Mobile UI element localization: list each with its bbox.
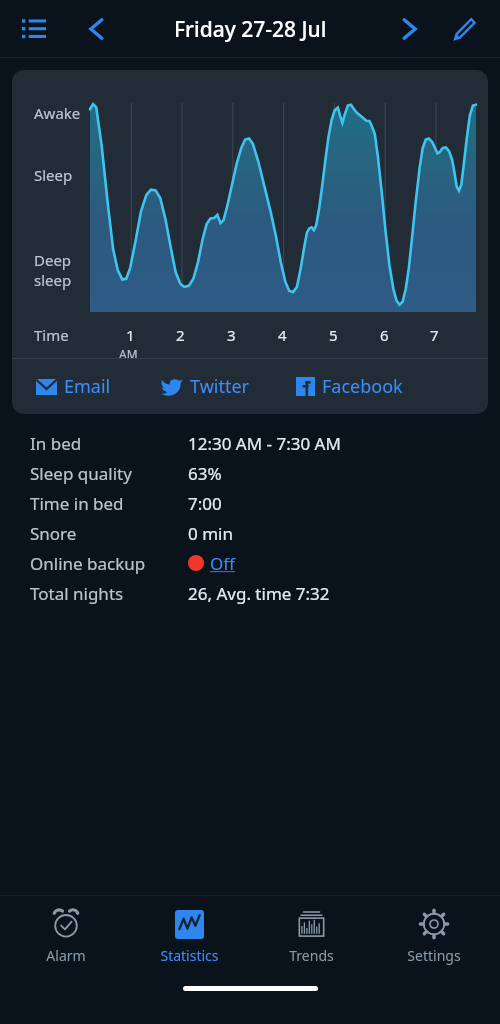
staticText: Deep bbox=[34, 250, 72, 270]
staticText: sleep bbox=[34, 270, 72, 290]
button[interactable]: In bed bbox=[30, 428, 470, 458]
button[interactable]: Menu list bbox=[12, 7, 56, 51]
staticText: AM bbox=[119, 346, 138, 362]
button[interactable]: Trends bbox=[255, 904, 367, 969]
staticText: Email bbox=[64, 374, 111, 399]
button[interactable]: Email bbox=[34, 368, 113, 405]
button[interactable]: Time in bed bbox=[30, 488, 470, 518]
staticText: In bed bbox=[30, 432, 188, 455]
staticText: 1 bbox=[126, 325, 135, 345]
button[interactable]: Alarm bbox=[10, 904, 122, 969]
button[interactable]: Statistics bbox=[133, 904, 245, 969]
button[interactable]: Total nights bbox=[30, 578, 470, 608]
staticText: 5 bbox=[329, 325, 338, 345]
staticText: 6 bbox=[380, 325, 389, 345]
staticText: Alarm bbox=[46, 946, 86, 965]
staticText: Settings bbox=[407, 946, 461, 965]
button[interactable]: Online backup bbox=[30, 548, 470, 578]
staticText: 26, Avg. time 7:32 bbox=[188, 582, 330, 605]
staticText: Snore bbox=[30, 522, 188, 545]
staticText: Time in bed bbox=[30, 492, 188, 515]
button[interactable]: Previous day bbox=[74, 6, 120, 52]
staticText: Sleep quality bbox=[30, 462, 188, 485]
staticText: Statistics bbox=[160, 946, 219, 965]
staticText: 2 bbox=[176, 325, 185, 345]
staticText: 63% bbox=[188, 462, 222, 485]
staticText: 7:00 bbox=[188, 492, 222, 515]
staticText: Online backup bbox=[30, 552, 188, 575]
button[interactable]: Twitter bbox=[159, 368, 252, 405]
staticText: Facebook bbox=[322, 374, 403, 399]
staticText: Twitter bbox=[190, 374, 250, 399]
button[interactable]: Snore bbox=[30, 518, 470, 548]
staticText: Friday 27-28 Jul bbox=[174, 15, 327, 44]
button[interactable]: Next day bbox=[386, 6, 432, 52]
button[interactable]: Sleep quality bbox=[30, 458, 470, 488]
staticText: 0 min bbox=[188, 522, 233, 545]
staticText: 4 bbox=[278, 325, 287, 345]
staticText: Total nights bbox=[30, 582, 188, 605]
staticText: Sleep bbox=[34, 165, 73, 185]
staticText: Awake bbox=[34, 103, 81, 123]
button[interactable]: Facebook bbox=[294, 368, 405, 405]
staticText: 12:30 AM - 7:30 AM bbox=[188, 432, 341, 455]
staticText: Off bbox=[210, 552, 235, 575]
staticText: 3 bbox=[227, 325, 236, 345]
staticText: Time bbox=[34, 325, 69, 345]
staticText: 7 bbox=[430, 325, 439, 345]
staticText: Trends bbox=[289, 946, 334, 965]
button[interactable]: Settings bbox=[378, 904, 490, 969]
button[interactable]: Edit bbox=[442, 7, 486, 51]
